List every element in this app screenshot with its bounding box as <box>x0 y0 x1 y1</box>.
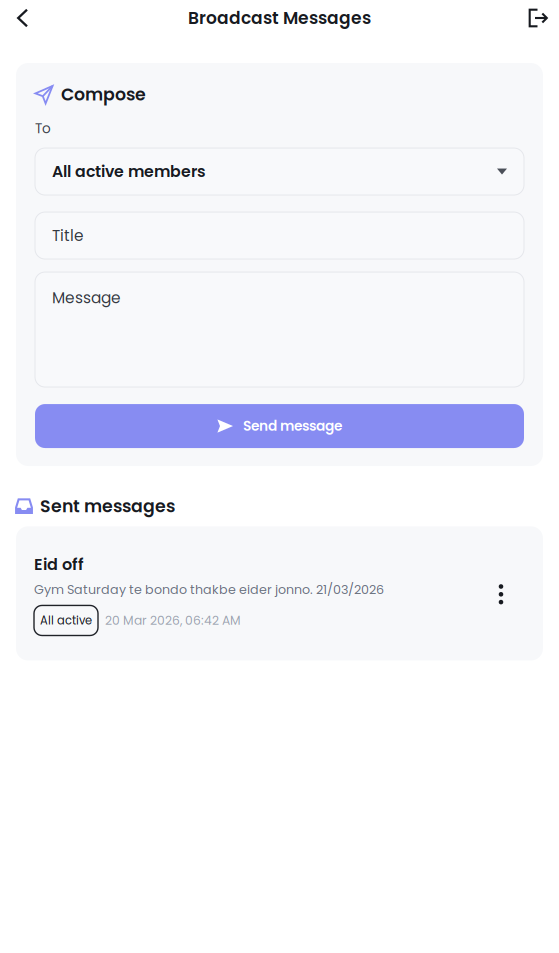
staticText: Compose <box>61 82 146 107</box>
staticText: Eid off <box>34 553 84 576</box>
staticText: All active members <box>52 160 206 182</box>
button[interactable]: Log out <box>519 0 557 36</box>
staticText: Broadcast Messages <box>188 6 371 30</box>
staticText: Message <box>52 287 121 308</box>
button[interactable]: All active members <box>35 148 524 195</box>
staticText: Gym Saturday te bondo thakbe eider jonno… <box>34 581 384 598</box>
staticText: Title <box>52 225 84 246</box>
staticText: Send message <box>243 416 342 436</box>
staticText: All active <box>40 612 92 628</box>
staticText: To <box>35 119 51 138</box>
button[interactable]: Send message <box>35 404 524 448</box>
button[interactable]: More options <box>486 573 516 615</box>
staticText: 20 Mar 2026, 06:42 AM <box>105 612 241 629</box>
staticText: Sent messages <box>40 494 175 518</box>
button[interactable]: Back <box>3 0 42 36</box>
